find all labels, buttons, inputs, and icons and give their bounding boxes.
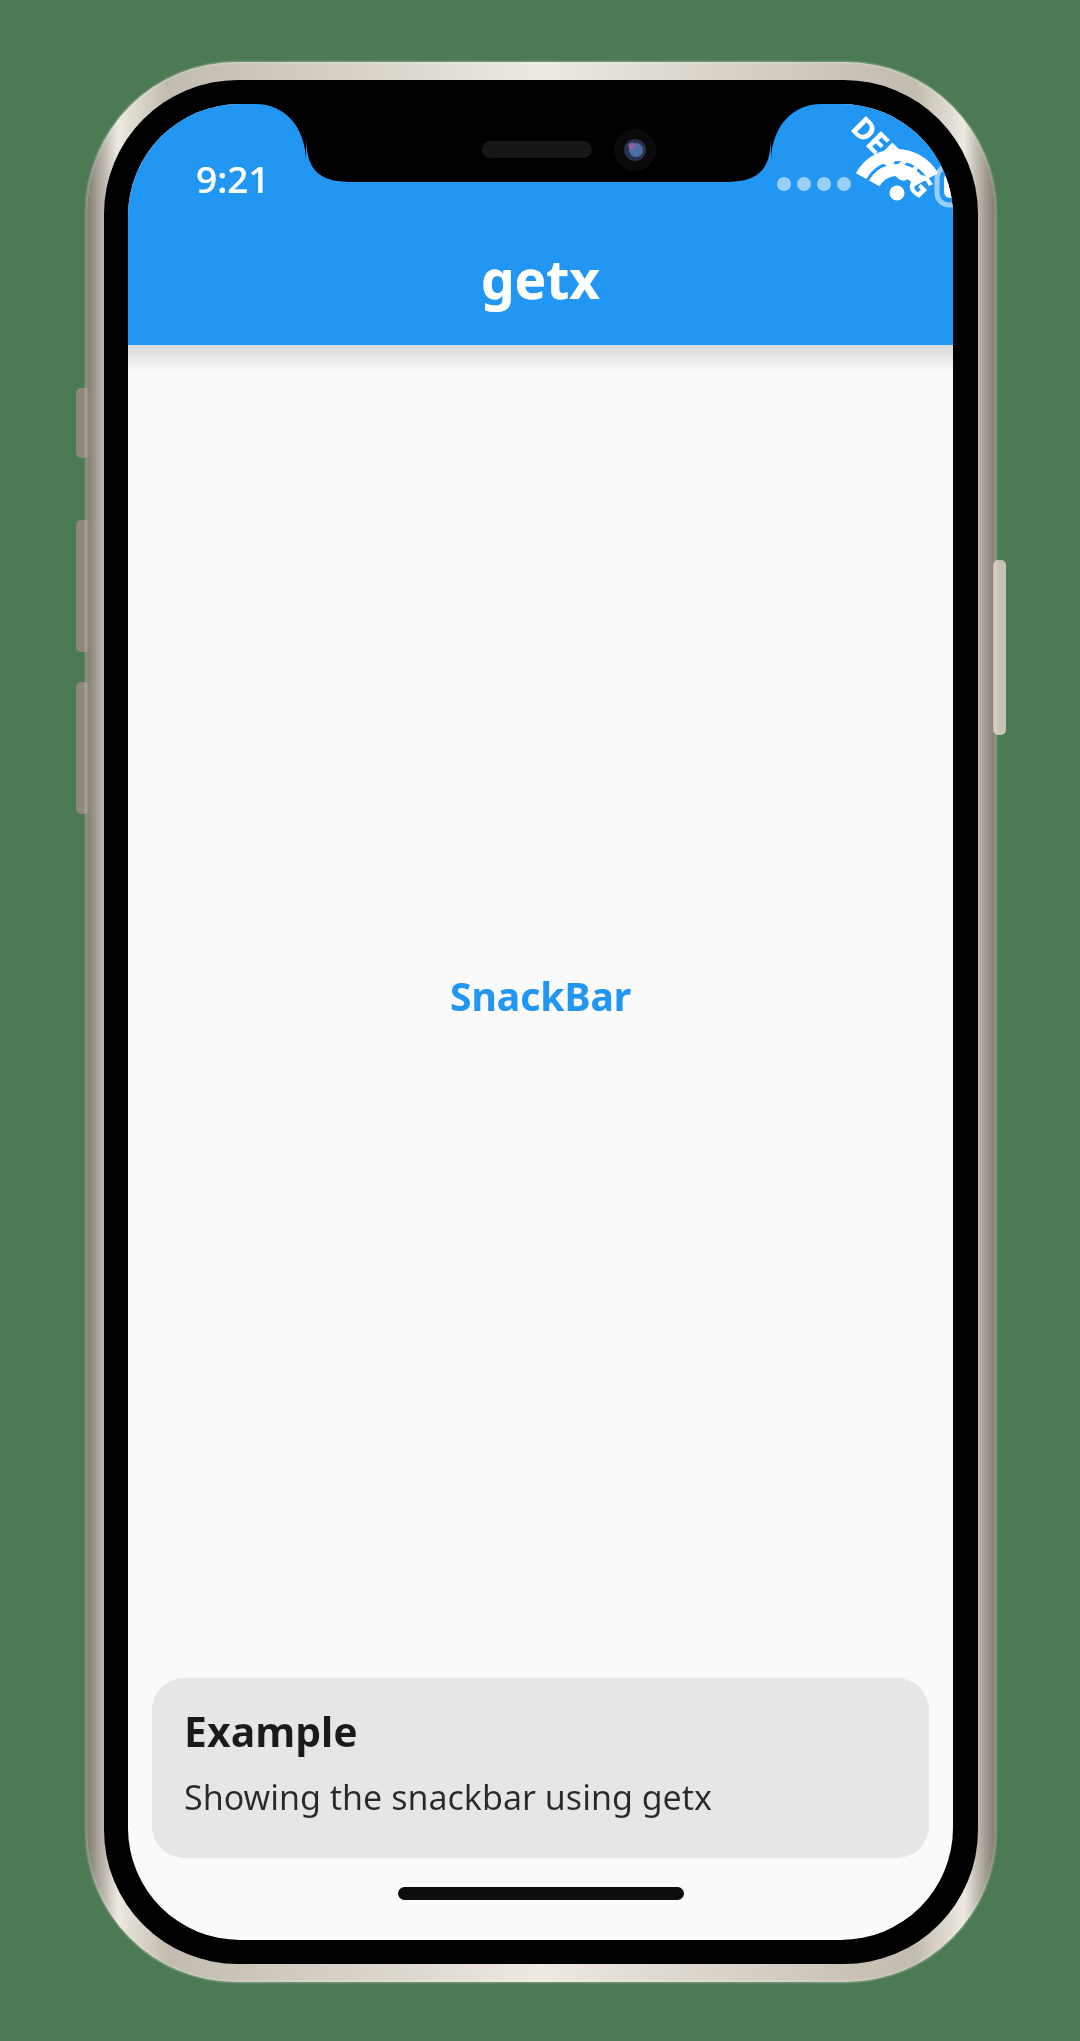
staticText: DEBUG bbox=[844, 107, 942, 206]
staticText: Showing the snackbar using getx bbox=[184, 1774, 713, 1820]
button[interactable]: SnackBar bbox=[432, 957, 650, 1034]
staticText: 9:21 bbox=[196, 153, 270, 203]
button[interactable]: Example bbox=[152, 1678, 929, 1858]
staticText: SnackBar bbox=[450, 969, 632, 1022]
other: Debug banner bbox=[838, 128, 948, 184]
staticText: getx bbox=[481, 242, 600, 314]
staticText: Example bbox=[184, 1703, 358, 1759]
